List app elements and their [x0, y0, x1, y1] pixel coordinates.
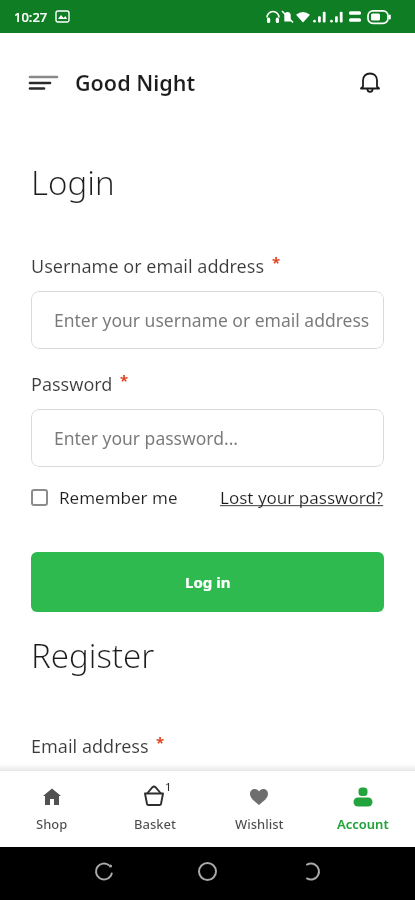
- staticText: Username or email address: [31, 254, 265, 279]
- button[interactable]: Shop: [0, 770, 103, 847]
- staticText: Login: [31, 160, 115, 205]
- button[interactable]: [352, 65, 388, 101]
- staticText: Remember me: [59, 486, 178, 509]
- button[interactable]: [31, 489, 48, 506]
- staticText: Password: [31, 372, 113, 397]
- staticText: 1: [165, 779, 172, 794]
- button[interactable]: Wishlist: [207, 770, 311, 847]
- staticText: Shop: [36, 815, 68, 833]
- staticText: Enter your password...: [54, 426, 239, 450]
- button[interactable]: Lost your password?: [220, 486, 384, 509]
- staticText: Basket: [134, 815, 176, 833]
- button[interactable]: Log in: [31, 552, 384, 612]
- staticText: *: [156, 732, 165, 752]
- staticText: Register: [31, 633, 155, 678]
- staticText: Enter your username or email address: [54, 308, 370, 332]
- button[interactable]: 1: [103, 770, 207, 847]
- staticText: Log in: [185, 572, 231, 592]
- button[interactable]: Enter your password...: [31, 409, 384, 467]
- staticText: *: [120, 370, 129, 390]
- staticText: Email address: [31, 734, 149, 759]
- staticText: 10:27: [14, 8, 48, 26]
- button[interactable]: Account: [311, 770, 415, 847]
- button[interactable]: [22, 63, 62, 103]
- staticText: Account: [337, 815, 389, 833]
- staticText: *: [272, 252, 281, 272]
- staticText: Wishlist: [235, 815, 284, 833]
- button[interactable]: [31, 772, 384, 830]
- staticText: Good Night: [75, 68, 196, 97]
- button[interactable]: Enter your username or email address: [31, 291, 384, 349]
